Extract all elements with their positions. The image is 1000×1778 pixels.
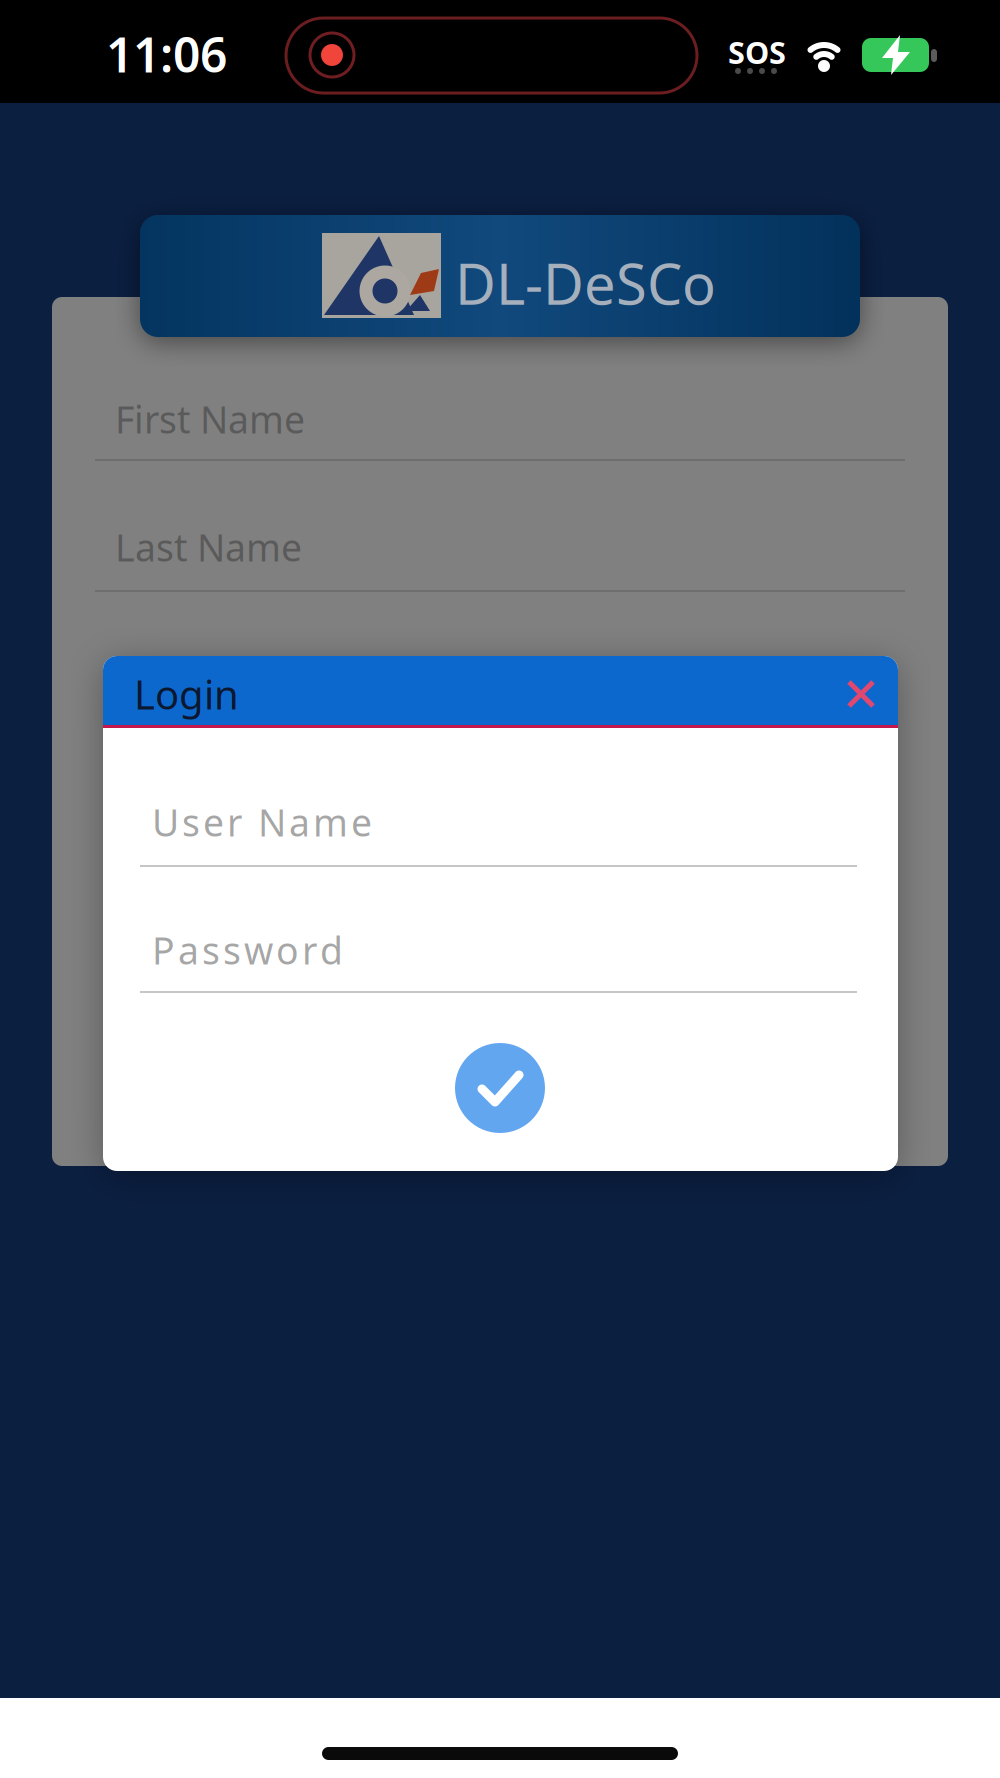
- staticText: r: [227, 797, 242, 847]
- staticText: s: [182, 797, 200, 847]
- staticText: a: [178, 925, 199, 975]
- staticText: m: [313, 797, 348, 847]
- staticText: w: [244, 925, 273, 975]
- staticText: d: [320, 925, 343, 975]
- button[interactable]: Submit: [0, 0, 1000, 1778]
- staticText: e: [351, 797, 372, 847]
- staticText: First Name: [115, 394, 305, 444]
- staticText: U: [152, 797, 179, 847]
- staticText: DL-DeSCo: [455, 246, 716, 320]
- staticText: 11:06: [106, 22, 227, 86]
- button[interactable]: Password: [0, 0, 1000, 1778]
- staticText: Login: [134, 667, 239, 720]
- staticText: Last Name: [115, 522, 302, 572]
- staticText: a: [289, 797, 310, 847]
- staticText: o: [276, 925, 299, 975]
- staticText: N: [258, 797, 286, 847]
- button[interactable]: User Name: [0, 0, 1000, 1778]
- staticText: P: [152, 925, 175, 975]
- button[interactable]: Close: [0, 0, 1000, 1778]
- staticText: SOS: [728, 32, 786, 72]
- staticText: r: [302, 925, 317, 975]
- staticText: s: [202, 925, 220, 975]
- staticText: s: [223, 925, 241, 975]
- staticText: e: [203, 797, 224, 847]
